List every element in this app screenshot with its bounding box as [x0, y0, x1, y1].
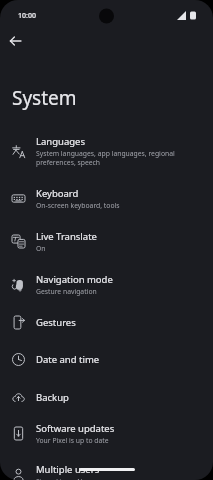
staticText: Gestures [36, 316, 76, 329]
button[interactable]: Back [4, 30, 26, 52]
staticText: Live Translate [36, 230, 97, 243]
button[interactable]: Languages [0, 125, 213, 177]
staticText: 10:00 [18, 11, 36, 21]
staticText: On [36, 244, 46, 253]
button[interactable]: Software updates [0, 413, 213, 454]
staticText: Languages [36, 135, 85, 148]
staticText: Signed in as Alan [36, 477, 91, 480]
staticText: Keyboard [36, 187, 79, 200]
button[interactable]: Live Translate [0, 220, 213, 263]
staticText: System languages, app languages, regiona… [36, 149, 175, 167]
staticText: Backup [36, 391, 69, 404]
button[interactable]: Gestures [0, 306, 213, 338]
button[interactable]: Date and time [0, 338, 213, 381]
staticText: Navigation mode [36, 273, 113, 286]
staticText: On-screen keyboard, tools [36, 201, 120, 210]
staticText: Date and time [36, 353, 100, 366]
button[interactable]: Backup [0, 381, 213, 413]
button[interactable]: Multiple users [0, 454, 213, 480]
staticText: Gesture navigation [36, 287, 97, 296]
staticText: Your Pixel is up to date [36, 436, 109, 445]
staticText: Multiple users [36, 463, 100, 476]
staticText: Software updates [36, 422, 115, 435]
staticText: System [12, 85, 77, 111]
button[interactable]: Keyboard [0, 177, 213, 220]
button[interactable]: Navigation mode [0, 263, 213, 306]
